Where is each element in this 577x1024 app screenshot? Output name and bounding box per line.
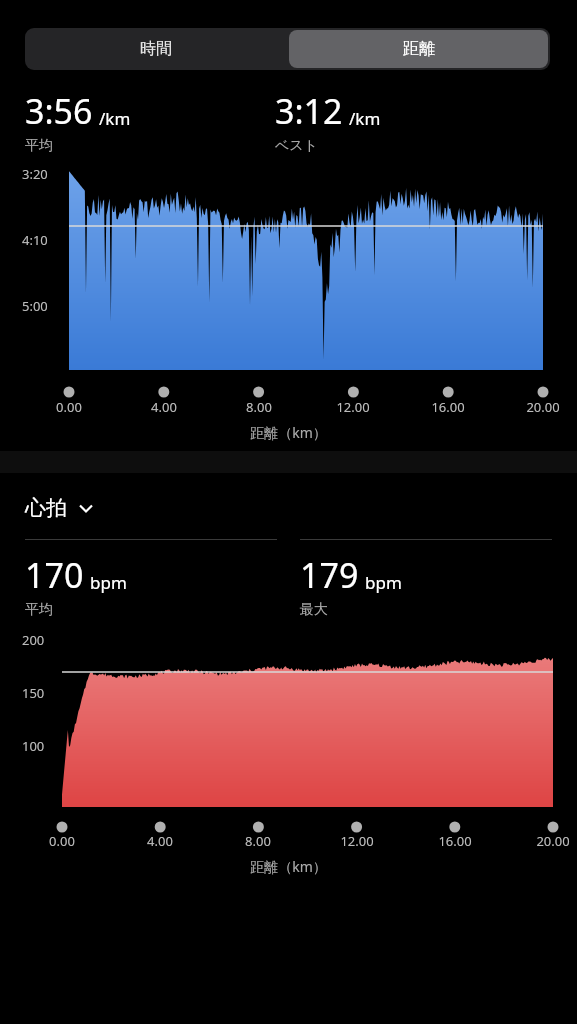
- staticText: 最大: [300, 601, 328, 619]
- staticText: 4:10: [22, 231, 48, 249]
- staticText: 距離（km）: [0, 857, 577, 876]
- staticText: 距離: [403, 39, 435, 59]
- staticText: 3:12: [275, 88, 343, 134]
- staticText: 20.00: [527, 832, 577, 850]
- staticText: 170: [25, 552, 84, 598]
- staticText: bpm: [90, 571, 127, 594]
- staticText: 距離（km）: [0, 423, 577, 442]
- staticText: 平均: [25, 137, 53, 155]
- staticText: 200: [22, 631, 45, 649]
- staticText: /km: [99, 107, 131, 130]
- staticText: 150: [22, 684, 45, 702]
- staticText: /km: [349, 107, 381, 130]
- staticText: 0.00: [43, 398, 95, 416]
- staticText: 3:56: [25, 88, 93, 134]
- staticText: 179: [300, 552, 359, 598]
- staticText: 16.00: [429, 832, 481, 850]
- staticText: 12.00: [331, 832, 383, 850]
- staticText: ベスト: [275, 137, 318, 155]
- staticText: 5:00: [22, 297, 48, 315]
- staticText: 平均: [25, 601, 53, 619]
- staticText: 4.00: [138, 398, 190, 416]
- button[interactable]: 心拍 — expand: [25, 495, 95, 521]
- staticText: 時間: [140, 39, 172, 59]
- button[interactable]: 時間: [25, 28, 287, 70]
- button[interactable]: 距離: [289, 30, 548, 68]
- staticText: 12.00: [327, 398, 379, 416]
- staticText: 100: [22, 737, 45, 755]
- staticText: 3:20: [22, 165, 48, 183]
- staticText: 0.00: [36, 832, 88, 850]
- staticText: 8.00: [232, 832, 284, 850]
- staticText: 16.00: [422, 398, 474, 416]
- staticText: 4.00: [134, 832, 186, 850]
- staticText: 8.00: [233, 398, 285, 416]
- staticText: 20.00: [517, 398, 569, 416]
- staticText: bpm: [365, 571, 402, 594]
- staticText: 心拍: [25, 495, 67, 521]
